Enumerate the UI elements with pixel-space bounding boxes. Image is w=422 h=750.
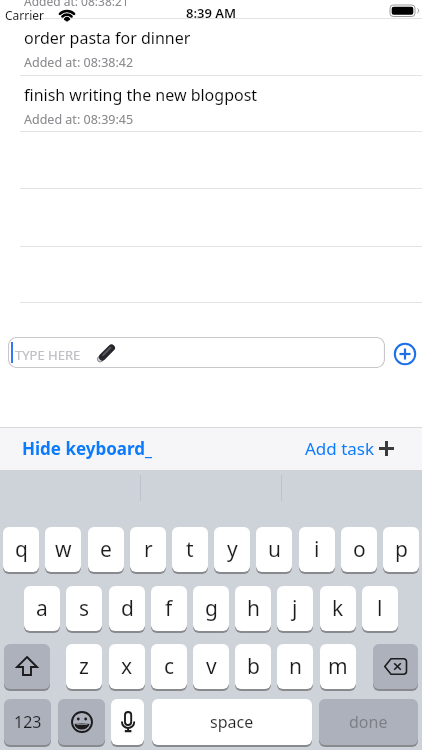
button[interactable]: space xyxy=(152,699,312,745)
button[interactable]: y xyxy=(214,527,250,572)
button[interactable]: x xyxy=(109,644,145,689)
staticText: m xyxy=(328,652,348,681)
button[interactable] xyxy=(58,699,105,745)
staticText: Added at: 08:39:45 xyxy=(24,111,134,128)
button[interactable]: f xyxy=(151,586,187,631)
button[interactable]: q xyxy=(3,527,39,572)
staticText: space xyxy=(210,711,254,733)
staticText: z xyxy=(79,652,89,681)
staticText: v xyxy=(206,652,217,681)
staticText: Hide keyboard_ xyxy=(22,437,152,460)
staticText: o xyxy=(353,535,366,564)
staticText: Carrier xyxy=(5,7,45,23)
staticText: w xyxy=(55,535,72,564)
button[interactable]: p xyxy=(383,527,419,572)
staticText: Add task xyxy=(305,437,375,460)
staticText: Added at: 08:38:21 xyxy=(24,0,129,9)
button[interactable] xyxy=(111,699,144,745)
button[interactable]: 123 xyxy=(4,699,51,745)
staticText: q xyxy=(15,535,28,564)
button[interactable]: finish writing the new blogpost xyxy=(24,84,258,128)
button[interactable]: v xyxy=(193,644,229,689)
button[interactable] xyxy=(4,644,50,689)
button[interactable]: Hide keyboard_ xyxy=(22,437,152,460)
staticText: d xyxy=(121,594,134,623)
staticText: u xyxy=(268,535,281,564)
staticText: y xyxy=(227,535,238,564)
staticText: i xyxy=(314,535,320,564)
staticText: done xyxy=(349,711,388,733)
button[interactable]: w xyxy=(45,527,81,572)
button[interactable]: z xyxy=(66,644,102,689)
staticText: s xyxy=(79,594,90,623)
staticText: g xyxy=(205,594,218,623)
staticText: b xyxy=(247,652,260,681)
button[interactable]: s xyxy=(66,586,102,631)
staticText: order pasta for dinner xyxy=(24,27,191,49)
staticText: 8:39 AM xyxy=(186,4,237,22)
button[interactable]: k xyxy=(320,586,356,631)
button[interactable]: m xyxy=(320,644,356,689)
staticText: h xyxy=(247,594,260,623)
staticText: p xyxy=(395,535,408,564)
staticText: k xyxy=(332,594,344,623)
button[interactable]: done xyxy=(319,699,418,745)
staticText: finish writing the new blogpost xyxy=(24,84,258,106)
button[interactable] xyxy=(373,644,418,689)
button[interactable]: TYPE HERE xyxy=(8,337,385,368)
staticText: t xyxy=(186,535,194,564)
staticText: Added at: 08:38:42 xyxy=(24,54,134,71)
button[interactable]: h xyxy=(235,586,271,631)
button[interactable]: e xyxy=(88,527,124,572)
button[interactable]: n xyxy=(277,644,313,689)
staticText: n xyxy=(289,652,302,681)
staticText: x xyxy=(121,652,133,681)
button[interactable]: g xyxy=(193,586,229,631)
button[interactable] xyxy=(392,341,418,367)
button[interactable]: o xyxy=(341,527,377,572)
button[interactable]: i xyxy=(299,527,335,572)
button[interactable]: j xyxy=(277,586,313,631)
button[interactable]: order pasta for dinner xyxy=(24,27,191,71)
button[interactable]: b xyxy=(235,644,271,689)
button[interactable]: Add task xyxy=(305,437,394,460)
staticText: l xyxy=(377,594,383,623)
staticText: TYPE HERE xyxy=(15,346,81,364)
button[interactable]: u xyxy=(256,527,292,572)
staticText: 123 xyxy=(14,711,42,733)
button[interactable]: d xyxy=(109,586,145,631)
staticText: r xyxy=(144,535,153,564)
button[interactable]: a xyxy=(24,586,60,631)
staticText: a xyxy=(36,594,48,623)
staticText: f xyxy=(165,594,173,623)
staticText: c xyxy=(164,652,175,681)
staticText: e xyxy=(100,535,112,564)
button[interactable]: c xyxy=(151,644,187,689)
button[interactable]: r xyxy=(130,527,166,572)
button[interactable]: t xyxy=(172,527,208,572)
staticText: j xyxy=(292,594,298,623)
button[interactable]: l xyxy=(362,586,398,631)
